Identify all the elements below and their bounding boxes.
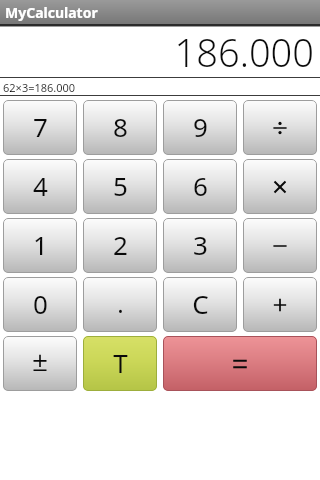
button[interactable]: 8 xyxy=(83,100,157,155)
button[interactable]: 1 xyxy=(3,218,77,273)
staticText: . xyxy=(117,287,124,320)
staticText: 2 xyxy=(113,227,128,262)
staticText: 0 xyxy=(33,286,48,321)
staticText: 5 xyxy=(113,168,128,203)
button[interactable]: 5 xyxy=(83,159,157,214)
button[interactable]: 3 xyxy=(163,218,237,273)
staticText: T xyxy=(113,345,128,380)
button[interactable]: C xyxy=(163,277,237,332)
button[interactable]: Divide xyxy=(243,100,317,155)
staticText: MyCalculator xyxy=(5,3,98,22)
button[interactable]: Equals xyxy=(163,336,317,391)
button[interactable]: 9 xyxy=(163,100,237,155)
button[interactable]: 6 xyxy=(163,159,237,214)
staticText: 3 xyxy=(193,227,208,262)
button[interactable]: T xyxy=(83,336,157,391)
staticText: 62×3=186.000 xyxy=(3,80,76,95)
button[interactable]: Plus xyxy=(243,277,317,332)
staticText: 9 xyxy=(193,109,208,144)
staticText: 4 xyxy=(33,168,48,203)
staticText: 186.000 xyxy=(174,26,314,76)
button[interactable]: 2 xyxy=(83,218,157,273)
staticText: 7 xyxy=(33,109,48,144)
button[interactable]: Plus or minus sign xyxy=(3,336,77,391)
button[interactable]: 4 xyxy=(3,159,77,214)
button[interactable]: 7 xyxy=(3,100,77,155)
button[interactable]: . xyxy=(83,277,157,332)
button[interactable]: Multiply xyxy=(243,159,317,214)
staticText: 8 xyxy=(113,109,128,144)
staticText: C xyxy=(192,286,209,321)
staticText: 1 xyxy=(33,227,48,262)
button[interactable]: 0 xyxy=(3,277,77,332)
button[interactable]: Minus xyxy=(243,218,317,273)
staticText: 6 xyxy=(193,168,208,203)
